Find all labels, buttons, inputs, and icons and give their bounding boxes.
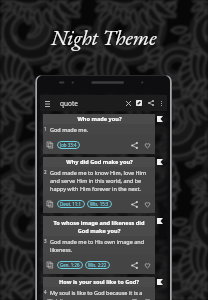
button[interactable]: Bookmark (157, 159, 163, 165)
staticText: God made me to know Him, love Him and se… (50, 169, 150, 193)
staticText: My soul is like to God because it is a s… (50, 289, 150, 300)
button[interactable]: Share (146, 98, 156, 108)
staticText: Why did God make you? (66, 158, 133, 166)
staticText: Night Theme (51, 24, 157, 51)
button[interactable]: Favourite (142, 199, 152, 209)
staticText: How is your soul like to God? (59, 278, 139, 286)
staticText: Wis. 2:22 (88, 262, 107, 268)
staticText: Who made you? (77, 115, 122, 123)
button[interactable]: Share (129, 260, 139, 270)
staticText: God made me. (50, 126, 89, 133)
staticText: 1 (44, 126, 47, 132)
button[interactable]: Navigation menu (42, 98, 53, 109)
button[interactable]: Share (129, 199, 139, 209)
button[interactable]: Clear search (123, 98, 133, 108)
button[interactable]: Bookmark (157, 279, 163, 285)
staticText: Gen. 1:26 (60, 262, 80, 268)
button[interactable]: Favourite (142, 140, 152, 150)
button[interactable]: Gen. 1:26 (57, 261, 83, 269)
staticText: God made me to His own image and likenes… (50, 238, 150, 254)
staticText: 3 (44, 238, 47, 244)
button[interactable]: Copy (45, 140, 55, 150)
button[interactable]: Wis. 2:22 (85, 261, 110, 269)
staticText: 4 (44, 289, 47, 295)
button[interactable]: Wis. 15:3 (87, 200, 112, 208)
button[interactable]: Voice search (134, 98, 144, 108)
staticText: quote (60, 99, 78, 108)
staticText: Deut. 11:1 (60, 201, 82, 207)
button[interactable]: Favourite (142, 260, 152, 270)
button[interactable]: Bookmark (157, 116, 163, 122)
button[interactable]: Bookmark (157, 218, 163, 224)
staticText: Wis. 15:3 (90, 201, 109, 207)
staticText: 2 (44, 169, 47, 175)
staticText: Job 33:4 (60, 142, 77, 148)
button[interactable]: Copy (45, 199, 55, 209)
button[interactable]: Share (129, 140, 139, 150)
staticText: To whose image and likeness did God make… (51, 219, 147, 234)
button[interactable]: Job 33:4 (57, 141, 80, 149)
button[interactable]: Copy (45, 260, 55, 270)
button[interactable]: More options (157, 99, 166, 108)
button[interactable]: Deut. 11:1 (57, 200, 85, 208)
